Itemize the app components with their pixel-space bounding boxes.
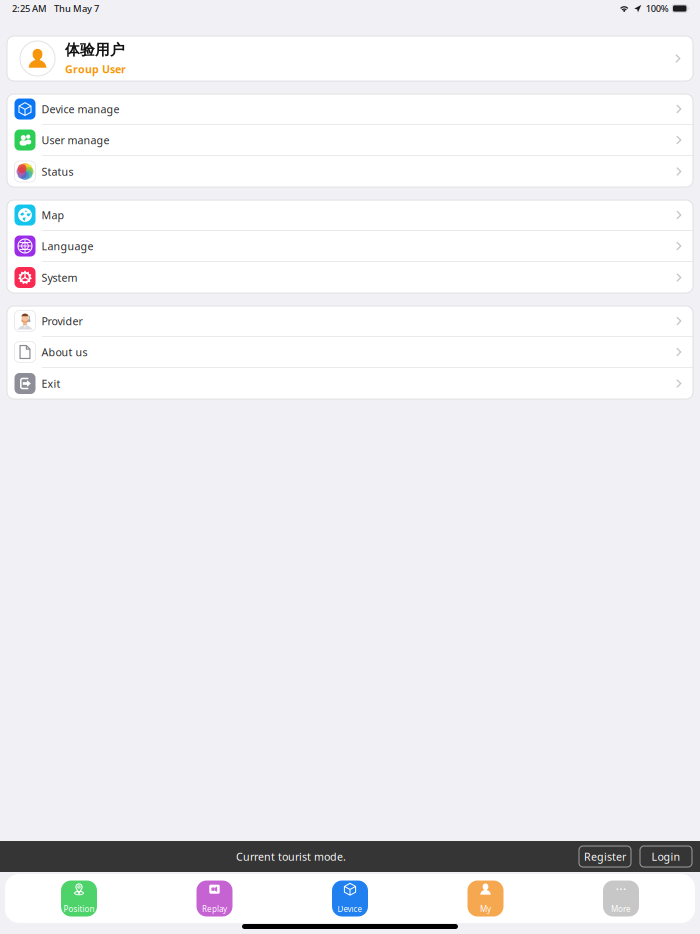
staticText: Register [584, 849, 626, 864]
button[interactable]: Device manage [7, 94, 693, 125]
staticText: Thu May 7 [54, 2, 99, 15]
staticText: Provider [41, 314, 82, 328]
staticText: Language [41, 239, 93, 253]
button[interactable]: Replay [196, 880, 232, 916]
staticText: 体验用户 [65, 41, 125, 59]
button[interactable]: Status [7, 156, 693, 187]
button[interactable]: Position [61, 880, 97, 916]
staticText: Device manage [41, 102, 119, 116]
button[interactable]: Device [332, 880, 368, 916]
staticText: System [41, 270, 77, 285]
staticText: Status [41, 164, 73, 179]
button[interactable]: Login [640, 846, 692, 867]
staticText: My [480, 904, 491, 914]
button[interactable]: Register [579, 846, 631, 867]
staticText: Login [651, 849, 680, 864]
staticText: About us [41, 345, 87, 359]
button[interactable]: More [603, 880, 639, 916]
button[interactable]: My [467, 880, 503, 916]
staticText: Replay [202, 904, 227, 914]
button[interactable]: 体验用户 [0, 36, 700, 81]
staticText: Exit [41, 376, 60, 391]
staticText: Current tourist mode. [236, 849, 346, 864]
button[interactable]: System [7, 262, 693, 293]
button[interactable]: Provider [7, 306, 693, 337]
staticText: Device [337, 904, 362, 914]
button[interactable]: About us [7, 337, 693, 368]
staticText: More [611, 904, 631, 914]
staticText: 100% [646, 2, 669, 15]
staticText: User manage [41, 133, 109, 147]
button[interactable]: Language [7, 231, 693, 262]
staticText: Group User [65, 62, 126, 76]
staticText: Position [63, 904, 94, 914]
staticText: Map [41, 208, 64, 222]
button[interactable]: Exit [7, 368, 693, 399]
staticText: 2:25 AM [12, 2, 47, 15]
button[interactable]: Map [7, 200, 693, 231]
button[interactable]: User manage [7, 125, 693, 156]
